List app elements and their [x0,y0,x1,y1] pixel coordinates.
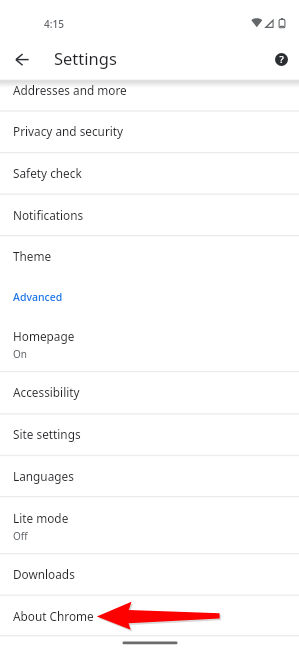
button[interactable]: Help [265,43,297,75]
staticText: Site settings [13,426,81,442]
staticText: Off [13,529,28,543]
button[interactable]: Homepage [0,314,299,371]
staticText: 4:15 [44,17,64,31]
staticText: Advanced [13,290,63,304]
button[interactable]: Downloads [0,553,299,595]
button[interactable]: Lite mode [0,496,299,553]
staticText: Homepage [13,328,75,344]
button[interactable]: Back [6,43,38,75]
staticText: Languages [13,468,74,484]
staticText: Downloads [13,566,75,582]
staticText: Safety check [13,165,82,181]
button[interactable]: Addresses and more [0,69,299,111]
button[interactable]: Privacy and security [0,110,299,152]
button[interactable]: Theme [0,235,299,277]
staticText: Notifications [13,207,84,223]
staticText: Theme [13,248,52,264]
button[interactable]: Site settings [0,413,299,455]
staticText: Lite mode [13,510,69,526]
staticText: ? [279,53,284,66]
button[interactable]: About Chrome [0,595,299,636]
staticText: Settings [54,47,117,69]
button[interactable]: Accessibility [0,371,299,413]
staticText: Privacy and security [13,123,124,139]
staticText: Accessibility [13,384,80,400]
button[interactable]: Languages [0,455,299,496]
staticText: About Chrome [13,608,94,624]
button[interactable]: Notifications [0,194,299,236]
staticText: Addresses and more [13,82,127,98]
staticText: On [13,347,27,361]
button[interactable]: Safety check [0,152,299,194]
